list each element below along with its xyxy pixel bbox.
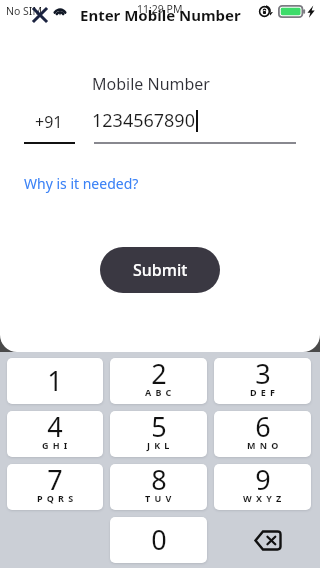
button[interactable]: 0 [110, 517, 207, 563]
staticText: 2 [151, 358, 167, 392]
staticText: 9 [255, 464, 271, 498]
button[interactable]: 6 [214, 411, 311, 457]
staticText: 0 [151, 521, 167, 558]
staticText: JKL [147, 439, 174, 451]
staticText: 1 [47, 362, 63, 399]
staticText: 1234567890 [92, 108, 195, 133]
staticText: 7 [47, 464, 63, 498]
staticText: 11:29 PM [137, 2, 183, 16]
button[interactable]: 9 [214, 464, 311, 510]
staticText: TUV [145, 492, 176, 504]
button[interactable]: 4 [7, 411, 103, 457]
staticText: GHI [42, 439, 72, 451]
button[interactable]: 7 [7, 464, 103, 510]
button[interactable]: 2 [110, 358, 207, 404]
button[interactable]: 8 [110, 464, 207, 510]
button[interactable]: +91 [23, 111, 75, 142]
staticText: 4 [47, 411, 63, 445]
button[interactable]: 1 [7, 358, 103, 404]
staticText: 8 [151, 464, 167, 498]
staticText: Enter Mobile Number [80, 5, 241, 25]
staticText: ABC [145, 386, 176, 398]
staticText: 6 [255, 411, 271, 445]
staticText: PQRS [37, 492, 78, 504]
staticText: DEF [250, 386, 280, 398]
button[interactable]: 5 [110, 411, 207, 457]
staticText: 3 [255, 358, 271, 392]
staticText: 5 [151, 411, 167, 445]
staticText: +91 [35, 111, 63, 133]
staticText: MNO [247, 439, 283, 451]
staticText: No SIM [6, 4, 42, 18]
staticText: Mobile Number [92, 73, 210, 95]
staticText: WXYZ [243, 492, 286, 504]
button[interactable]: 3 [214, 358, 311, 404]
button[interactable]: Backspace [214, 517, 311, 563]
button[interactable]: Submit [100, 247, 220, 293]
button[interactable]: Why is it needed? [24, 174, 139, 193]
staticText: Submit [133, 259, 188, 281]
